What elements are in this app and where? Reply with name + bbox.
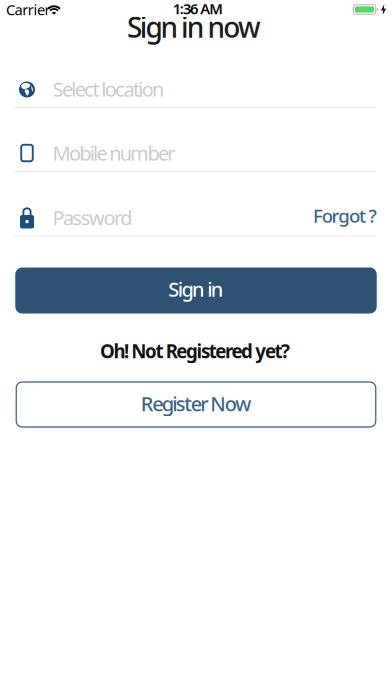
staticText: Register Now	[141, 390, 251, 417]
button[interactable]: Mobile number	[0, 133, 392, 177]
button[interactable]: Register Now	[16, 382, 376, 427]
button[interactable]: Sign in	[15, 267, 377, 313]
button[interactable]: Password	[0, 198, 392, 242]
staticText: Mobile number	[52, 140, 175, 166]
staticText: Forgot ?	[313, 203, 376, 228]
button[interactable]: Select location	[0, 69, 392, 113]
staticText: Password	[52, 204, 132, 231]
staticText: Oh! Not Registered yet?	[100, 339, 290, 363]
staticText: 1:36 AM	[173, 0, 223, 18]
staticText: Carrier	[6, 0, 51, 19]
staticText: Sign in	[168, 276, 224, 302]
staticText: Sign in now	[127, 8, 261, 46]
staticText: Select location	[52, 76, 164, 102]
button[interactable]: Forgot ?	[280, 202, 376, 228]
